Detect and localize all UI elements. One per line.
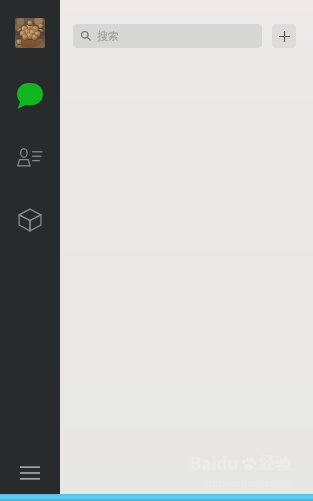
staticText: 搜索: [97, 29, 119, 43]
button[interactable]: Profile: [15, 18, 45, 48]
button[interactable]: Chats: [13, 79, 47, 113]
button[interactable]: Mini Programs: [13, 203, 47, 237]
button[interactable]: 搜索: [73, 24, 262, 48]
button[interactable]: Menu: [12, 458, 48, 488]
button[interactable]: Add: [272, 24, 296, 48]
button[interactable]: Contacts: [13, 141, 47, 175]
